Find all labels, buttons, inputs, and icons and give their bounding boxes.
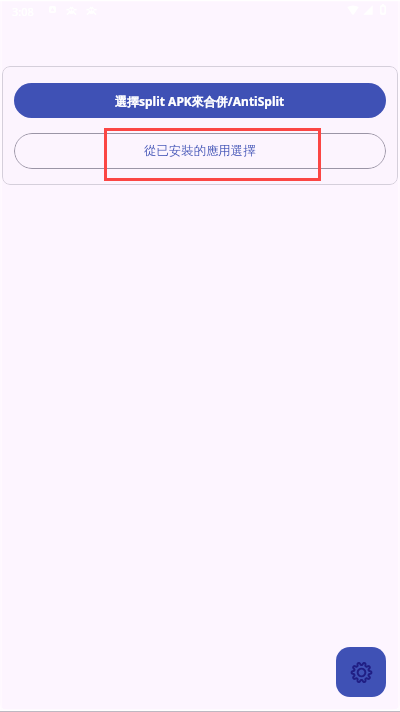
button[interactable]: 從已安裝的應用選擇 — [14, 133, 386, 169]
staticText: 選擇split APK來合併/AntiSplit — [115, 93, 285, 109]
staticText: 3:08 — [12, 4, 34, 19]
button[interactable]: 選擇split APK來合併/AntiSplit — [14, 83, 386, 118]
staticText: 從已安裝的應用選擇 — [144, 143, 256, 159]
button[interactable]: Settings — [336, 647, 386, 697]
